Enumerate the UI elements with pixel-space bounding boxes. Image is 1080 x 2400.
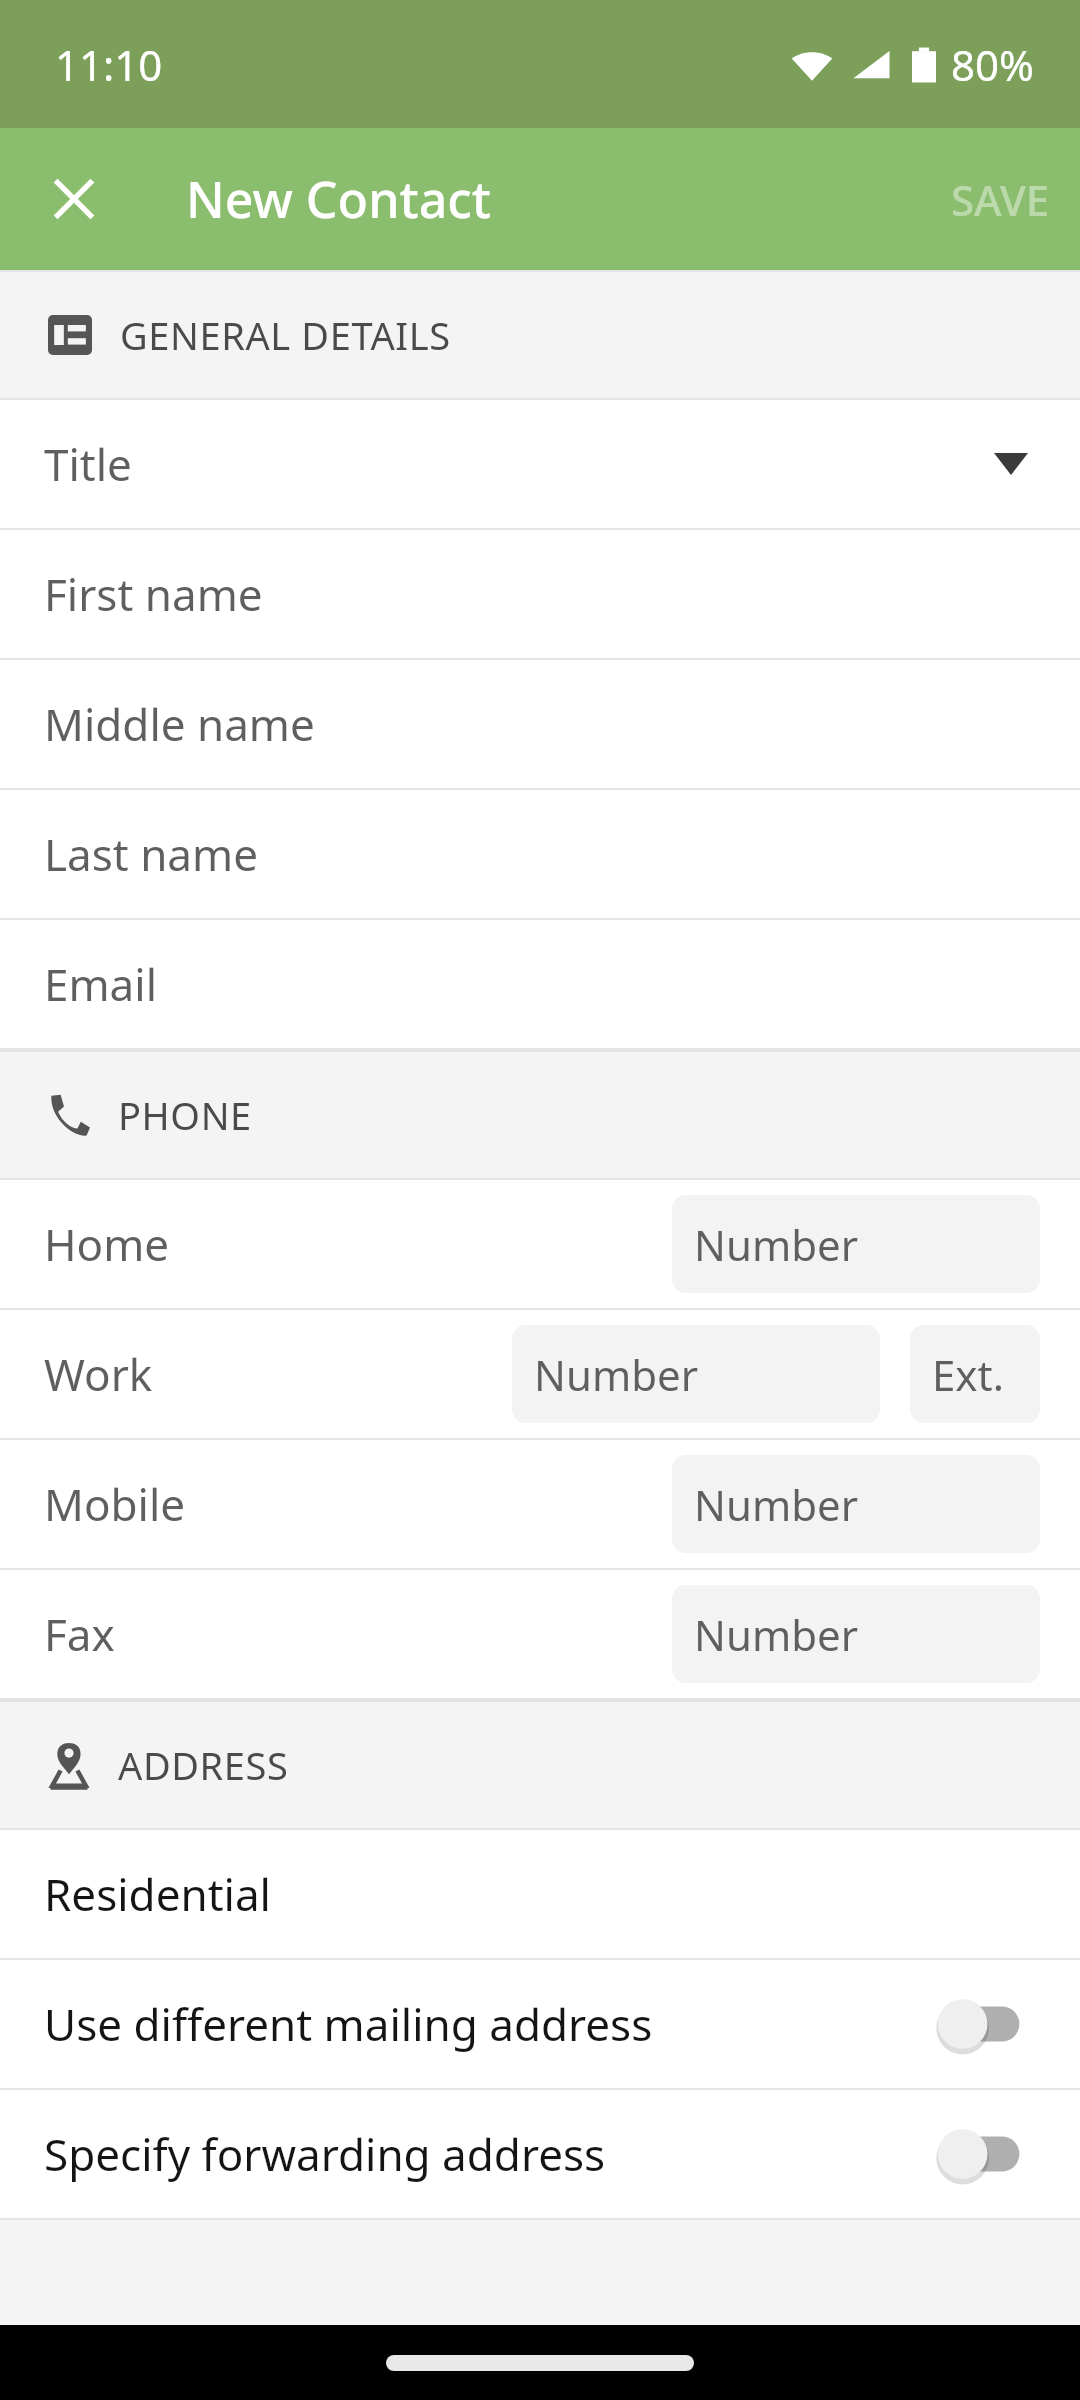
button[interactable]: Number [512,1325,880,1423]
staticText: Middle name [44,694,315,754]
button[interactable]: Number [672,1195,1040,1293]
button[interactable]: SAVE [921,147,1080,252]
button[interactable]: Number [672,1585,1040,1683]
button[interactable]: Fax [0,1570,1080,1698]
staticText: Fax [44,1604,672,1664]
staticText: Work [44,1344,512,1404]
staticText: Number [534,1346,699,1403]
button[interactable]: Middle name [0,660,1080,788]
button[interactable]: Use different mailing address [0,1960,1080,2088]
other: Select title [986,439,1036,489]
staticText: Number [694,1606,859,1663]
staticText: GENERAL DETAILS [120,309,451,361]
button[interactable]: Number [672,1455,1040,1553]
button[interactable]: Home [0,1180,1080,1308]
staticText: New Contact [186,165,491,233]
button[interactable]: Residential [0,1830,1080,1958]
staticText: Specify forwarding address [44,2124,920,2184]
button[interactable]: Title [0,400,1080,528]
staticText: 80% [951,36,1034,93]
staticText: Use different mailing address [44,1994,920,2054]
button[interactable]: Last name [0,790,1080,918]
staticText: Title [44,434,986,494]
button[interactable]: Ext. [910,1325,1040,1423]
button[interactable]: Mobile [0,1440,1080,1568]
staticText: Residential [44,1864,271,1924]
staticText: Number [694,1476,859,1533]
button[interactable]: First name [0,530,1080,658]
staticText: ADDRESS [118,1739,289,1791]
staticText: 11:10 [55,36,163,93]
button[interactable]: Specify forwarding address [0,2090,1080,2218]
button[interactable]: Close [26,151,122,247]
staticText: First name [44,564,263,624]
staticText: SAVE [951,171,1050,228]
staticText: Ext. [932,1346,1004,1403]
staticText: Email [44,954,157,1014]
button[interactable]: Work [0,1310,1080,1438]
staticText: PHONE [118,1089,252,1141]
staticText: Last name [44,824,258,884]
staticText: Number [694,1216,859,1273]
staticText: Mobile [44,1474,672,1534]
button[interactable]: Email [0,920,1080,1048]
staticText: Home [44,1214,672,1274]
